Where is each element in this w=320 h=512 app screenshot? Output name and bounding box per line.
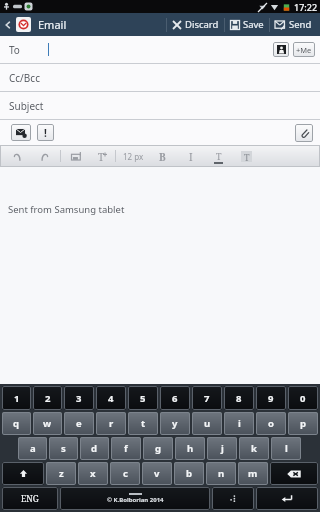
staticText: d	[91, 442, 98, 455]
button[interactable]: 8	[224, 386, 254, 410]
button[interactable]: 2	[33, 386, 62, 410]
staticText: Sent from Samsung tablet	[8, 203, 125, 216]
button[interactable]: +Me	[293, 42, 315, 57]
staticText: q	[13, 417, 20, 430]
button[interactable]: ENG	[2, 487, 58, 510]
staticText: B	[159, 150, 166, 164]
button[interactable]: p	[288, 412, 318, 435]
button[interactable]: 7	[192, 386, 222, 410]
button[interactable]: Shift	[2, 462, 44, 485]
staticText: Email	[38, 17, 67, 32]
button[interactable]: Priority	[37, 124, 54, 141]
button[interactable]: Attach file	[295, 124, 313, 142]
button[interactable]: 12 px	[121, 151, 146, 162]
staticText: © K.Bolborian 2014	[107, 496, 164, 504]
staticText: 5	[140, 392, 146, 405]
button[interactable]: Save	[225, 13, 269, 36]
staticText: 7	[204, 392, 210, 405]
staticText: Cc/Bcc	[9, 71, 40, 85]
button[interactable]: Bold	[155, 149, 170, 164]
button[interactable]: l	[271, 437, 301, 460]
button[interactable]: t	[128, 412, 158, 435]
staticText: T	[244, 151, 250, 162]
button[interactable]: Pick contact	[273, 42, 289, 57]
button[interactable]: q	[2, 412, 31, 435]
button[interactable]: Back	[0, 17, 69, 32]
staticText: g	[155, 442, 162, 455]
staticText: z	[59, 467, 64, 480]
button[interactable]: x	[78, 462, 108, 485]
staticText: To	[9, 43, 20, 57]
staticText: r	[109, 417, 114, 430]
button[interactable]: f	[111, 437, 141, 460]
button[interactable]: Discard	[167, 13, 224, 36]
staticText: Subject	[9, 99, 44, 113]
button[interactable]: Send	[270, 13, 317, 36]
button[interactable]: u	[192, 412, 222, 435]
other: Back	[4, 21, 12, 29]
button[interactable]: m	[238, 462, 268, 485]
staticText: c	[123, 467, 128, 480]
button[interactable]: Add picture	[11, 124, 31, 141]
button[interactable]: w	[33, 412, 62, 435]
button[interactable]: Redo	[37, 149, 52, 164]
button[interactable]: o	[256, 412, 286, 435]
staticText: b	[186, 467, 193, 480]
button[interactable]: k	[239, 437, 269, 460]
staticText: l	[285, 442, 288, 455]
staticText: Save	[243, 18, 264, 31]
staticText: ENG	[21, 493, 39, 505]
button[interactable]: s	[49, 437, 78, 460]
button[interactable]: b	[174, 462, 204, 485]
staticText: 4	[108, 392, 114, 405]
staticText: e	[76, 417, 82, 430]
button[interactable]: To	[0, 36, 320, 63]
staticText: h	[187, 442, 194, 455]
button[interactable]: Highlight	[239, 149, 254, 164]
button[interactable]: i	[224, 412, 254, 435]
button[interactable]: Italic	[183, 149, 198, 164]
button[interactable]: c	[110, 462, 140, 485]
button[interactable]: 6	[160, 386, 190, 410]
staticText: t	[141, 417, 146, 430]
button[interactable]: Text colour	[211, 149, 226, 164]
staticText: 3	[76, 392, 82, 405]
staticText: Send	[289, 18, 312, 31]
staticText: y	[172, 417, 178, 430]
staticText: i	[238, 417, 241, 430]
button[interactable]: Insert image	[69, 149, 84, 164]
button[interactable]: Backspace	[270, 462, 318, 485]
staticText: x	[90, 467, 96, 480]
button[interactable]: 4	[96, 386, 126, 410]
button[interactable]: n	[206, 462, 236, 485]
button[interactable]: 5	[128, 386, 158, 410]
staticText: p	[300, 417, 307, 430]
button[interactable]: 9	[256, 386, 286, 410]
button[interactable]: Enter	[256, 487, 318, 510]
staticText: m	[248, 467, 258, 480]
staticText: I	[189, 150, 193, 164]
button[interactable]: Cc/Bcc	[0, 64, 320, 91]
button[interactable]: Undo	[10, 149, 25, 164]
button[interactable]: h	[175, 437, 205, 460]
button[interactable]: y	[160, 412, 190, 435]
staticText: 17:22	[294, 1, 318, 13]
button[interactable]: Space	[60, 487, 210, 510]
button[interactable]: Punctuation	[212, 487, 254, 510]
button[interactable]: e	[64, 412, 94, 435]
button[interactable]: g	[143, 437, 173, 460]
button[interactable]: 3	[64, 386, 94, 410]
staticText: v	[154, 467, 160, 480]
button[interactable]: a	[18, 437, 47, 460]
staticText: w	[43, 417, 52, 430]
button[interactable]: 1	[2, 386, 31, 410]
button[interactable]: 0	[288, 386, 318, 410]
button[interactable]: z	[46, 462, 76, 485]
button[interactable]: d	[80, 437, 109, 460]
staticText: T	[98, 150, 105, 164]
button[interactable]: Text size	[94, 149, 109, 164]
button[interactable]: v	[142, 462, 172, 485]
button[interactable]: Subject	[0, 92, 320, 119]
button[interactable]: j	[207, 437, 237, 460]
button[interactable]: r	[96, 412, 126, 435]
